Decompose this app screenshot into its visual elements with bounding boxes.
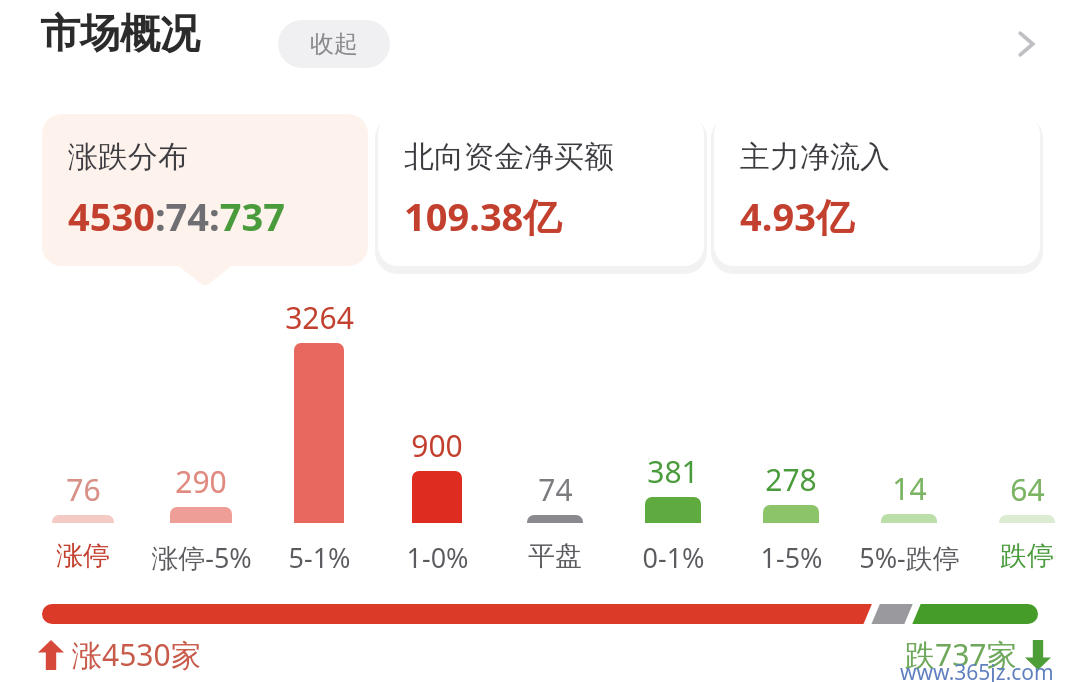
button[interactable]: 北向资金净买额 <box>378 114 704 266</box>
staticText: 278 <box>765 459 817 500</box>
staticText: 109.38亿 <box>404 190 562 242</box>
staticText: 主力净流入 <box>740 138 890 176</box>
staticText: 跌停 <box>1000 539 1054 573</box>
button[interactable]: 涨停-5% <box>142 539 260 576</box>
staticText: 涨4530家 <box>72 634 201 675</box>
button[interactable]: 1-5% <box>732 539 850 576</box>
button[interactable]: 收起 <box>278 20 390 68</box>
staticText: 涨跌分布 <box>68 138 188 176</box>
button[interactable]: 主力净流入 <box>714 114 1040 266</box>
button[interactable]: 5-1% <box>260 539 378 576</box>
staticText: 5%-跌停 <box>859 539 960 576</box>
staticText: www.365jz.com <box>900 658 1054 682</box>
staticText: 收起 <box>310 29 358 59</box>
staticText: 900 <box>411 425 463 466</box>
button[interactable]: More <box>1000 18 1052 70</box>
staticText: 381 <box>647 451 699 492</box>
button[interactable]: 涨停 <box>24 539 142 573</box>
button[interactable]: 涨跌分布 <box>42 114 368 266</box>
staticText: 涨停-5% <box>151 539 252 576</box>
staticText: 涨停 <box>56 539 110 573</box>
staticText: 14 <box>892 468 927 509</box>
staticText: 1-0% <box>406 539 469 576</box>
staticText: 4530:74:737 <box>68 190 285 242</box>
staticText: 0-1% <box>642 539 705 576</box>
button[interactable]: 0-1% <box>614 539 732 576</box>
staticText: 74 <box>538 469 573 510</box>
staticText: 1-5% <box>760 539 823 576</box>
staticText: 平盘 <box>528 539 582 573</box>
button[interactable]: 5%-跌停 <box>850 539 968 576</box>
staticText: 北向资金净买额 <box>404 138 614 176</box>
button[interactable]: 1-0% <box>378 539 496 576</box>
staticText: 5-1% <box>288 539 351 576</box>
button[interactable]: 平盘 <box>496 539 614 573</box>
staticText: 64 <box>1010 469 1045 510</box>
staticText: 76 <box>66 469 101 510</box>
button[interactable]: 跌停 <box>968 539 1080 573</box>
staticText: 290 <box>175 461 227 502</box>
staticText: 3264 <box>285 297 354 338</box>
staticText: 4.93亿 <box>740 190 854 242</box>
staticText: 市场概况 <box>40 8 200 58</box>
staticText: 跌737家 <box>905 634 1017 675</box>
